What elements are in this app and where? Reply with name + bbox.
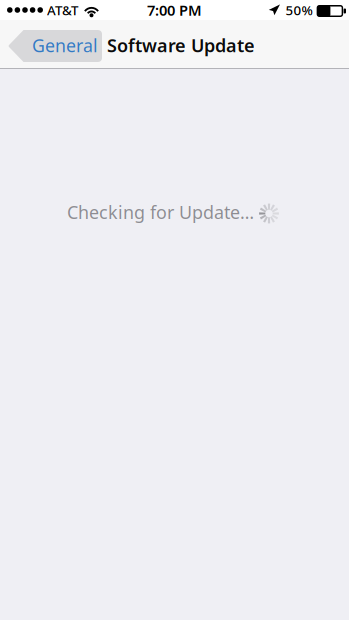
staticText: 7:00 PM	[147, 0, 202, 20]
staticText: 50%	[285, 1, 312, 19]
staticText: General	[32, 33, 98, 58]
staticText: Software Update	[107, 33, 255, 57]
staticText: AT&T	[47, 1, 78, 19]
button[interactable]: Back to General	[8, 20, 102, 69]
staticText: Checking for Update…	[67, 200, 254, 224]
